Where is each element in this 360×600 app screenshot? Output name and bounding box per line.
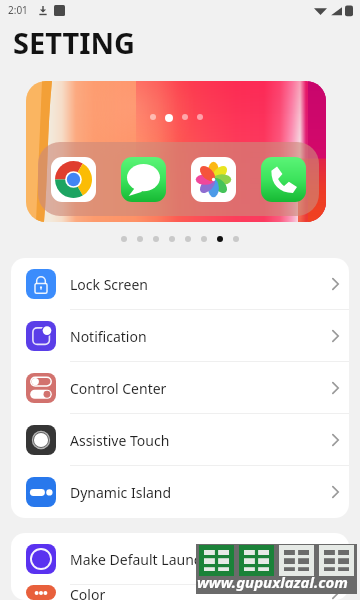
button[interactable]: Phone — [261, 157, 306, 202]
button[interactable]: Control Center — [11, 362, 349, 414]
button[interactable]: Assistive Touch — [11, 414, 349, 466]
button[interactable]: Notification — [11, 310, 349, 362]
button[interactable]: Chrome — [26, 81, 326, 222]
staticText: Notification — [70, 327, 147, 346]
staticText: Lock Screen — [70, 275, 148, 294]
button[interactable]: Make Default Launcher — [11, 533, 349, 585]
button[interactable]: Chrome — [51, 157, 96, 202]
staticText: 2:01 — [8, 3, 28, 17]
staticText: www.gupuxlazal.com — [197, 572, 348, 592]
button[interactable]: Dynamic Island — [11, 466, 349, 518]
staticText: Dynamic Island — [70, 483, 172, 502]
staticText: Color — [70, 585, 106, 600]
button[interactable]: Lock Screen — [11, 258, 349, 310]
button[interactable]: Messages — [121, 157, 166, 202]
staticText: Control Center — [70, 379, 167, 398]
staticText: Make Default Launcher — [70, 550, 223, 569]
button[interactable]: Color — [11, 585, 349, 600]
staticText: SETTING — [13, 23, 136, 62]
staticText: Assistive Touch — [70, 431, 170, 450]
button[interactable]: Photos — [191, 157, 236, 202]
